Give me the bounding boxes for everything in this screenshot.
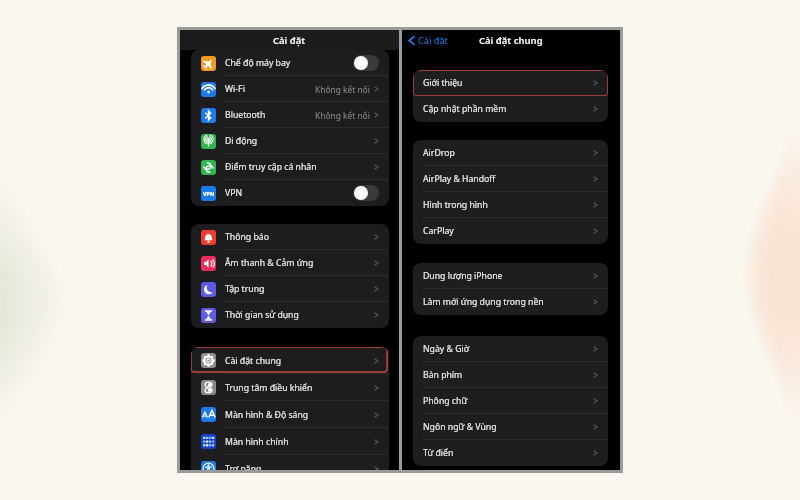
staticText: Chế độ máy bay: [225, 57, 291, 69]
button[interactable]: Trợ năng: [191, 455, 389, 470]
staticText: VPN: [203, 190, 215, 197]
button[interactable]: Làm mới ứng dụng trong nền: [413, 289, 608, 315]
button[interactable]: Bàn phím: [413, 362, 608, 388]
staticText: Từ điển: [423, 447, 454, 459]
staticText: AirPlay & Handoff: [423, 173, 496, 185]
staticText: Âm thanh & Cảm ứng: [225, 257, 314, 269]
staticText: Màn hình chính: [225, 436, 289, 448]
button[interactable]: Giới thiệu: [413, 70, 608, 96]
button[interactable]: Cài đặt: [402, 34, 454, 47]
staticText: Không kết nối: [315, 84, 370, 95]
button[interactable]: Cài đặt chung: [191, 347, 389, 374]
staticText: Màn hình & Độ sáng: [225, 409, 309, 421]
button[interactable]: Bluetooth: [191, 102, 389, 128]
button[interactable]: Màn hình chính: [191, 428, 389, 455]
staticText: Wi-Fi: [225, 83, 245, 95]
staticText: Hình trong hình: [423, 199, 488, 211]
staticText: Ngôn ngữ & Vùng: [423, 421, 497, 433]
staticText: Phông chữ: [423, 395, 468, 407]
button[interactable]: AirPlay & Handoff: [413, 166, 608, 192]
staticText: Trung tâm điều khiển: [225, 382, 313, 394]
button[interactable]: Thông báo: [191, 224, 389, 250]
staticText: Di động: [225, 135, 258, 147]
staticText: CarPlay: [423, 225, 454, 237]
button[interactable]: Từ điển: [413, 440, 608, 466]
staticText: Trợ năng: [225, 463, 262, 470]
button[interactable]: Tập trung: [191, 276, 389, 302]
button[interactable]: Chế độ máy bay: [191, 50, 389, 76]
button[interactable]: Phông chữ: [413, 388, 608, 414]
staticText: AirDrop: [423, 147, 455, 159]
button[interactable]: Ngôn ngữ & Vùng: [413, 414, 608, 440]
button[interactable]: VPN: [191, 180, 389, 206]
staticText: Ngày & Giờ: [423, 343, 470, 355]
button[interactable]: Di động: [191, 128, 389, 154]
button[interactable]: Toggle VPN: [353, 185, 379, 201]
staticText: Cài đặt: [418, 34, 448, 47]
button[interactable]: Thời gian sử dụng: [191, 302, 389, 328]
button[interactable]: Màn hình & Độ sáng: [191, 401, 389, 428]
button[interactable]: Ngày & Giờ: [413, 336, 608, 362]
staticText: Thời gian sử dụng: [225, 309, 299, 321]
staticText: Tập trung: [225, 283, 265, 295]
staticText: Cài đặt chung: [479, 34, 543, 47]
button[interactable]: Toggle Chế độ máy bay: [353, 55, 379, 71]
staticText: Điểm truy cập cá nhân: [225, 161, 317, 173]
staticText: Bàn phím: [423, 369, 463, 381]
button[interactable]: Cập nhật phần mềm: [413, 96, 608, 122]
staticText: Bluetooth: [225, 109, 266, 121]
staticText: VPN: [225, 187, 243, 199]
button[interactable]: Trung tâm điều khiển: [191, 374, 389, 401]
button[interactable]: CarPlay: [413, 218, 608, 244]
staticText: Làm mới ứng dụng trong nền: [423, 296, 544, 308]
button[interactable]: Dung lượng iPhone: [413, 263, 608, 289]
button[interactable]: Wi-Fi: [191, 76, 389, 102]
button[interactable]: Điểm truy cập cá nhân: [191, 154, 389, 180]
staticText: Cập nhật phần mềm: [423, 103, 507, 115]
button[interactable]: Hình trong hình: [413, 192, 608, 218]
button[interactable]: Âm thanh & Cảm ứng: [191, 250, 389, 276]
staticText: Cài đặt: [273, 34, 306, 47]
staticText: Giới thiệu: [423, 77, 463, 89]
button[interactable]: AirDrop: [413, 140, 608, 166]
staticText: Không kết nối: [315, 110, 370, 121]
staticText: Cài đặt chung: [225, 355, 282, 367]
staticText: Thông báo: [225, 231, 269, 243]
staticText: Dung lượng iPhone: [423, 270, 503, 282]
